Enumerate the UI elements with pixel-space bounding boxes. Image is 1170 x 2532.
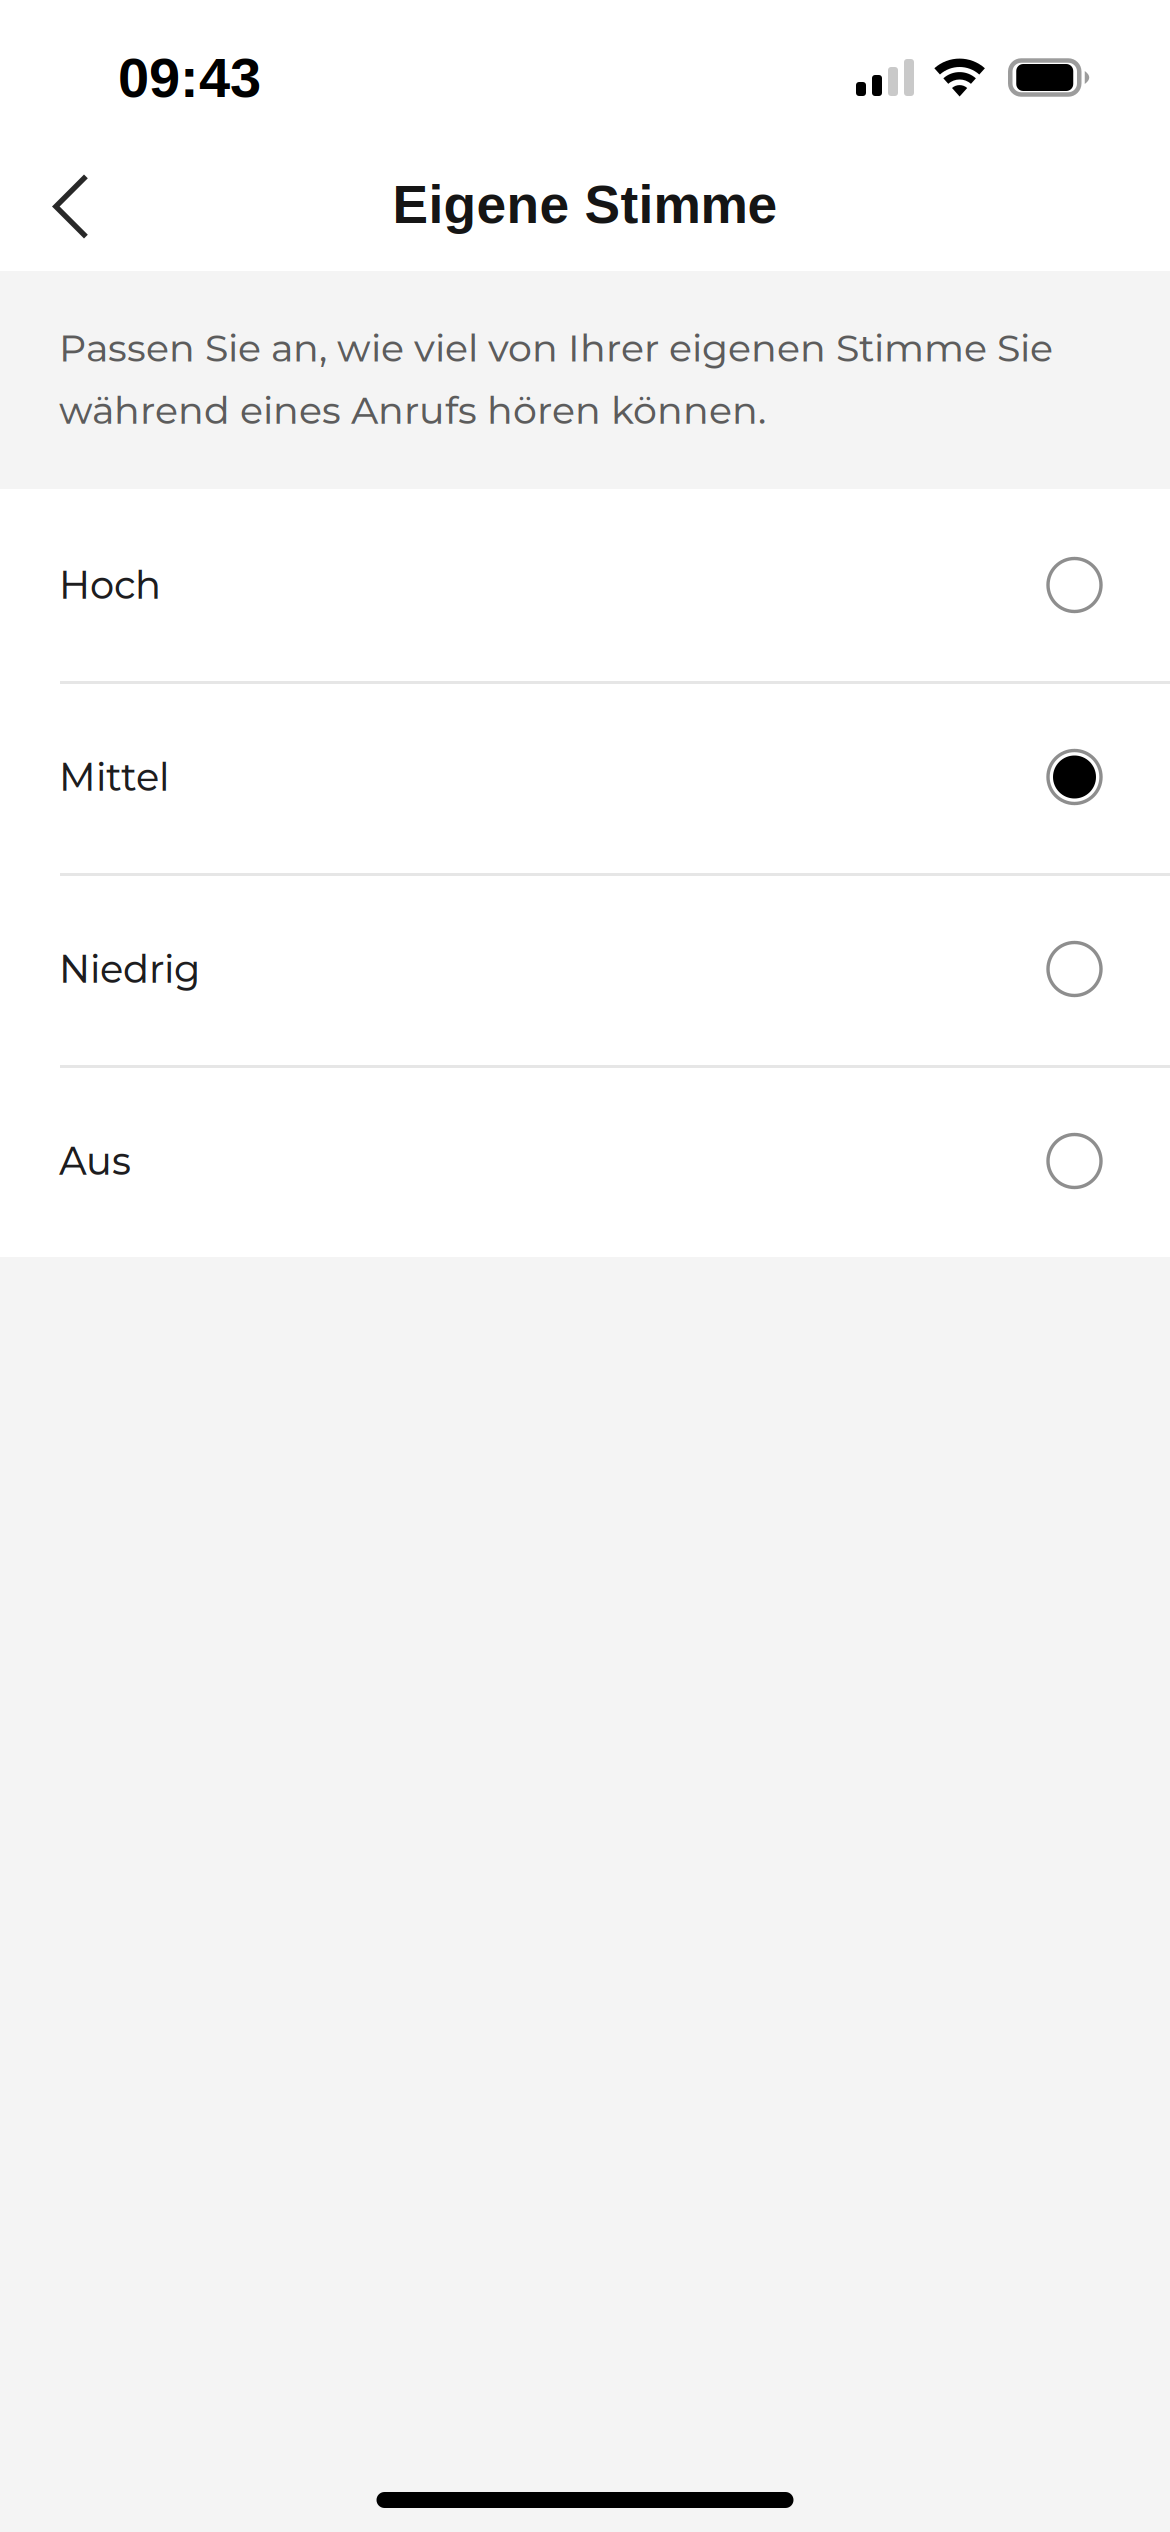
staticText: Aus	[59, 1138, 131, 1184]
staticText: Hoch	[59, 562, 161, 608]
button[interactable]: Hoch	[0, 489, 1170, 681]
button[interactable]: Aus	[0, 1065, 1170, 1257]
button[interactable]: Niedrig	[0, 873, 1170, 1065]
button[interactable]: Mittel	[0, 681, 1170, 873]
staticText: Mittel	[59, 754, 169, 800]
staticText: 09:43	[118, 46, 261, 109]
staticText: Eigene Stimme	[392, 175, 777, 234]
button[interactable]: Zurück	[0, 155, 150, 271]
staticText: Niedrig	[59, 946, 200, 992]
staticText: Passen Sie an, wie viel von Ihrer eigene…	[59, 325, 1053, 433]
